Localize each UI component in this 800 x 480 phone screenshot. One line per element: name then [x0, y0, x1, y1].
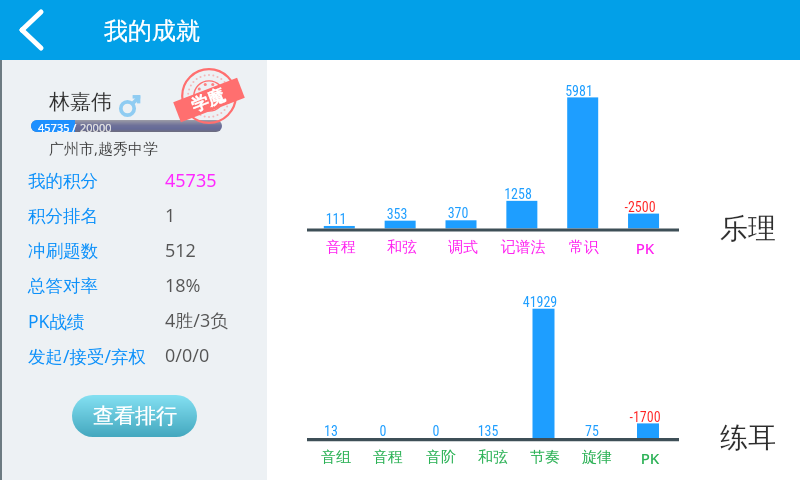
staticText: 记谱法 [483, 238, 563, 257]
button[interactable]: PK [610, 448, 690, 468]
staticText: 18% [165, 273, 201, 298]
staticText: 5981 [539, 83, 619, 99]
staticText: 1258 [478, 186, 558, 202]
staticText: 练耳 [720, 420, 776, 455]
staticText: 41929 [500, 294, 580, 310]
staticText: 和弦 [362, 238, 442, 257]
staticText: 音阶 [401, 448, 481, 467]
staticText: 我的成就 [104, 16, 200, 46]
button[interactable]: PK [605, 238, 685, 258]
staticText: 111 [296, 211, 376, 227]
button[interactable]: 音组 [296, 448, 376, 467]
staticText: 353 [357, 206, 437, 222]
staticText: 乐理 [720, 211, 776, 246]
staticText: 我的积分 [28, 170, 98, 192]
staticText: 音程 [348, 448, 428, 467]
staticText: -1700 [605, 409, 685, 425]
button[interactable]: 调式 [423, 238, 503, 257]
button[interactable]: 音程 [301, 238, 381, 257]
staticText: 总答对率 [28, 275, 98, 297]
staticText: 75 [552, 423, 632, 439]
staticText: 节奏 [505, 448, 585, 467]
staticText: -2500 [600, 199, 680, 215]
staticText: 冲刷题数 [28, 240, 98, 262]
staticText: 0/0/0 [165, 343, 210, 368]
staticText: 20000 [80, 120, 112, 132]
button[interactable]: 查看排行 [72, 395, 197, 437]
staticText: 13 [291, 423, 371, 439]
button[interactable]: 音程 [348, 448, 428, 467]
staticText: 林嘉伟 [49, 89, 112, 115]
button[interactable]: PK战绩 [0, 303, 267, 338]
button[interactable]: 发起/接受/弃权 [0, 338, 267, 373]
button[interactable]: 冲刷题数 [0, 233, 267, 268]
button[interactable]: Back [0, 0, 62, 60]
staticText: 查看排行 [93, 403, 177, 429]
staticText: 音程 [301, 238, 381, 257]
staticText: 和弦 [453, 448, 533, 467]
staticText: 发起/接受/弃权 [28, 344, 147, 368]
staticText: PK [610, 448, 690, 468]
staticText: 0 [396, 423, 476, 439]
staticText: 512 [165, 238, 196, 263]
button[interactable]: 旋律 [557, 448, 637, 467]
staticText: 调式 [423, 238, 503, 257]
button[interactable]: 总答对率 [0, 268, 267, 303]
button[interactable]: 积分排名 [0, 198, 267, 233]
staticText: 广州市,越秀中学 [49, 138, 159, 158]
button[interactable]: 记谱法 [483, 238, 563, 257]
staticText: 积分排名 [28, 205, 98, 227]
staticText: 135 [448, 423, 528, 439]
button[interactable]: 和弦 [362, 238, 442, 257]
staticText: 0 [343, 423, 423, 439]
staticText: 学魔 [188, 85, 228, 116]
button[interactable]: 音阶 [401, 448, 481, 467]
staticText: 音组 [296, 448, 376, 467]
button[interactable]: 和弦 [453, 448, 533, 467]
staticText: PK战绩 [28, 309, 85, 333]
button[interactable]: 我的积分 [0, 163, 267, 198]
staticText: 45735 / [38, 120, 80, 132]
button[interactable]: 常识 [544, 238, 624, 257]
staticText: 1 [165, 203, 176, 228]
staticText: PK [605, 238, 685, 258]
button[interactable]: 节奏 [505, 448, 585, 467]
staticText: 4胜/3负 [165, 308, 229, 333]
staticText: 常识 [544, 238, 624, 257]
staticText: 370 [418, 205, 498, 221]
staticText: 旋律 [557, 448, 637, 467]
staticText: 45735 [165, 168, 217, 193]
